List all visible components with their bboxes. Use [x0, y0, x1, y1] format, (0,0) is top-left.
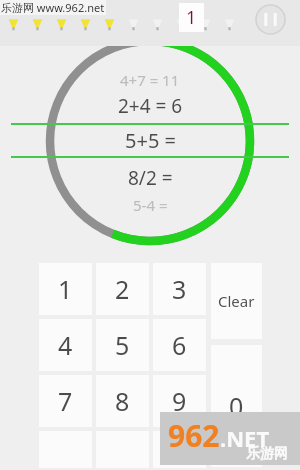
button[interactable]: Pause	[255, 4, 286, 35]
staticText: 8	[115, 384, 130, 418]
staticText: 乐游网	[246, 445, 288, 463]
staticText: 1	[58, 272, 73, 306]
staticText: .NET	[220, 423, 270, 453]
staticText: 5+5 =	[125, 127, 176, 154]
button[interactable]: 3	[153, 263, 206, 315]
staticText: 6	[172, 328, 187, 362]
button[interactable]: 1	[179, 3, 204, 32]
button[interactable]	[153, 431, 206, 468]
staticText: 4+7 = 11	[120, 70, 180, 90]
staticText: Clear	[218, 291, 255, 311]
staticText: 7	[58, 384, 73, 418]
staticText: 2+4 = 6	[118, 93, 183, 119]
button[interactable]: 9	[153, 375, 206, 427]
staticText: 962	[168, 415, 220, 456]
button[interactable]: 1	[39, 263, 92, 315]
staticText: 5-4 =	[133, 195, 168, 215]
staticText: 2	[115, 272, 130, 306]
staticText: 4	[58, 328, 73, 362]
staticText: 8/2 =	[128, 165, 173, 191]
staticText: 9	[172, 384, 187, 418]
button[interactable]: 2	[96, 263, 149, 315]
staticText: 1	[186, 5, 197, 30]
button[interactable]: 6	[153, 319, 206, 371]
staticText: 0	[229, 389, 244, 423]
staticText: 乐游网 www.962.net	[1, 0, 105, 15]
button[interactable]: Clear	[211, 263, 262, 339]
staticText: 3	[172, 272, 187, 306]
button[interactable]: 4	[39, 319, 92, 371]
button[interactable]: 8	[96, 375, 149, 427]
button[interactable]: 5	[96, 319, 149, 371]
button[interactable]: 7	[39, 375, 92, 427]
button[interactable]: 0	[211, 345, 262, 467]
staticText: 5	[115, 328, 130, 362]
